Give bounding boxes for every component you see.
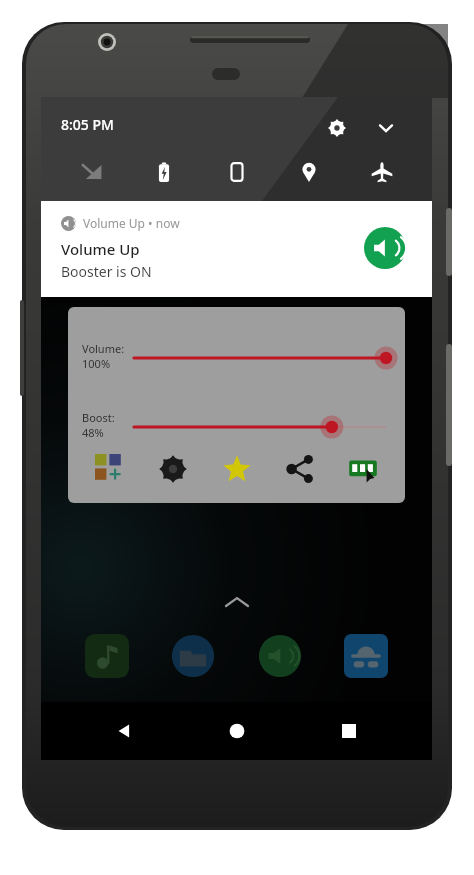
staticText: Boost:	[82, 410, 115, 425]
button[interactable]: Boost:	[68, 404, 405, 450]
button[interactable]: Location	[287, 155, 331, 189]
button[interactable]: Files	[159, 625, 227, 687]
button[interactable]: Volume booster toggle	[363, 226, 407, 270]
staticText: 48%	[82, 425, 104, 440]
staticText: Volume Up • now	[83, 215, 180, 231]
button[interactable]: Volume Up	[246, 625, 314, 687]
button[interactable]: Share	[273, 447, 327, 491]
button[interactable]: Volume Up • now	[41, 201, 432, 297]
button[interactable]: Home	[207, 709, 267, 753]
button[interactable]: Back	[94, 709, 154, 753]
button[interactable]: Add widget	[83, 447, 137, 491]
button[interactable]: Display	[215, 155, 259, 189]
staticText: 8:05 PM	[61, 115, 114, 134]
button[interactable]: Expand	[369, 111, 403, 145]
button[interactable]: Rate	[210, 447, 264, 491]
staticText: Booster is ON	[61, 262, 152, 281]
button[interactable]: Music	[73, 625, 141, 687]
button[interactable]: Incognito	[332, 625, 400, 687]
button[interactable]: Settings	[146, 447, 200, 491]
button[interactable]: Buy	[336, 447, 390, 491]
button[interactable]: Airplane mode	[360, 155, 404, 189]
staticText: 100%	[82, 356, 111, 371]
button[interactable]: Settings	[320, 111, 354, 145]
staticText: Volume:	[82, 341, 125, 356]
button[interactable]: Mobile data off	[70, 155, 114, 189]
button[interactable]: Battery charging	[142, 155, 186, 189]
button[interactable]: Recent apps	[319, 709, 379, 753]
staticText: Volume Up	[61, 239, 140, 259]
button[interactable]: Volume:	[68, 335, 405, 381]
